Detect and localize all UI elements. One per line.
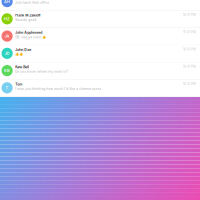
staticText: Hank M Zakroff	[15, 13, 40, 17]
staticText: I was just thinking how much I'd like a …	[15, 87, 101, 91]
staticText: T	[6, 85, 9, 90]
staticText: Kate Bell	[15, 65, 29, 69]
staticText: JA	[5, 34, 10, 38]
staticText: 10:41 PM	[183, 30, 196, 34]
staticText: KB	[4, 68, 10, 73]
staticText: Do you know where my mom is?	[15, 70, 68, 74]
staticText: AH	[4, 0, 10, 4]
staticText: 10:41 PM	[183, 13, 196, 17]
staticText: Just back from office	[15, 1, 49, 5]
staticText: 10:41 PM	[183, 82, 196, 86]
button[interactable]: JA	[0, 28, 200, 45]
staticText: Tom	[15, 82, 22, 86]
staticText: 10:41 PM	[183, 65, 196, 68]
button[interactable]: HZ	[0, 11, 200, 28]
staticText: 👍👍	[15, 52, 23, 56]
staticText: 10:41 PM	[183, 48, 196, 51]
staticText: JD	[5, 51, 10, 56]
button[interactable]: T	[0, 80, 200, 97]
staticText: HZ	[4, 16, 10, 21]
staticText: OK, see ya soon 👍	[15, 35, 46, 39]
button[interactable]: AH	[0, 0, 200, 10]
button[interactable]: JD	[0, 45, 200, 62]
staticText: Sounds good	[15, 18, 36, 22]
button[interactable]: KB	[0, 62, 200, 79]
staticText: John Doe	[15, 48, 31, 52]
staticText: John Appleseed	[15, 30, 42, 35]
